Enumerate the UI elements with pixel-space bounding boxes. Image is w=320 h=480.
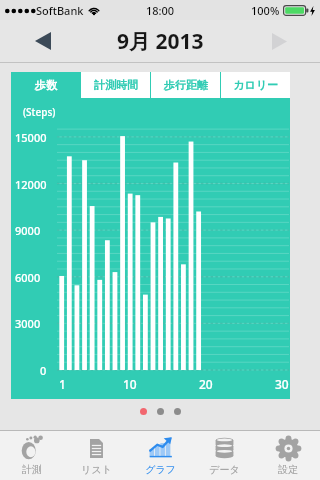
staticText: 6000 [15,270,41,285]
staticText: (Steps) [23,105,56,119]
staticText: 歩数 [35,78,57,92]
staticText: 設定 [278,463,298,476]
button[interactable]: カロリー [221,72,290,98]
button[interactable]: 歩行距離 [151,72,220,98]
staticText: 12000 [15,177,47,192]
button[interactable]: 計測 [0,431,64,480]
staticText: 30 [275,376,289,392]
staticText: リスト [81,463,112,476]
staticText: 15000 [15,130,47,145]
staticText: データ [209,463,240,476]
button[interactable]: 計測時間 [81,72,150,98]
staticText: 3000 [15,316,41,331]
staticText: 計測 [22,463,42,476]
staticText: グラフ [145,463,176,476]
staticText: 1 [59,376,66,392]
staticText: SoftBank [36,3,84,18]
staticText: 9000 [15,223,41,238]
button[interactable]: Next month [262,24,296,58]
button[interactable]: 歩数 [11,72,80,98]
staticText: 歩行距離 [164,78,208,92]
staticText: カロリー [233,78,278,92]
staticText: 100% [251,3,280,18]
button[interactable]: リスト [64,431,128,480]
staticText: 9月 2013 [117,27,204,56]
staticText: 10 [123,376,137,392]
button[interactable]: グラフ [128,431,192,480]
button[interactable]: Previous month [26,24,60,58]
button[interactable]: データ [192,431,256,480]
staticText: 0 [40,363,47,378]
staticText: 20 [199,376,213,392]
button[interactable]: 設定 [256,431,320,480]
staticText: 計測時間 [94,78,138,92]
staticText: 18:00 [146,3,175,18]
